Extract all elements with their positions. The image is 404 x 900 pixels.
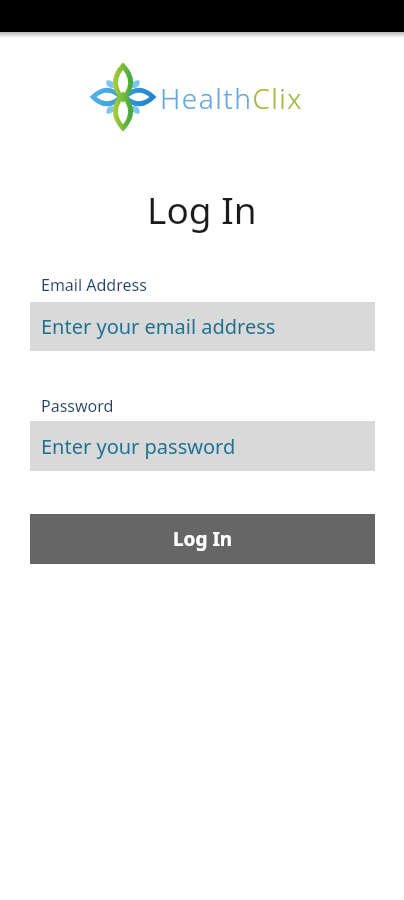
staticText: Log In <box>147 184 257 234</box>
staticText: Enter your password <box>41 433 236 460</box>
staticText: Log In <box>173 526 233 552</box>
staticText: Password <box>41 395 114 417</box>
button[interactable]: Enter your password <box>30 421 375 471</box>
staticText: Enter your email address <box>41 313 276 340</box>
staticText: Email Address <box>41 274 147 296</box>
button[interactable]: Enter your email address <box>30 302 375 351</box>
button[interactable]: Log In <box>30 514 375 564</box>
staticText: HealthClix <box>160 79 303 117</box>
